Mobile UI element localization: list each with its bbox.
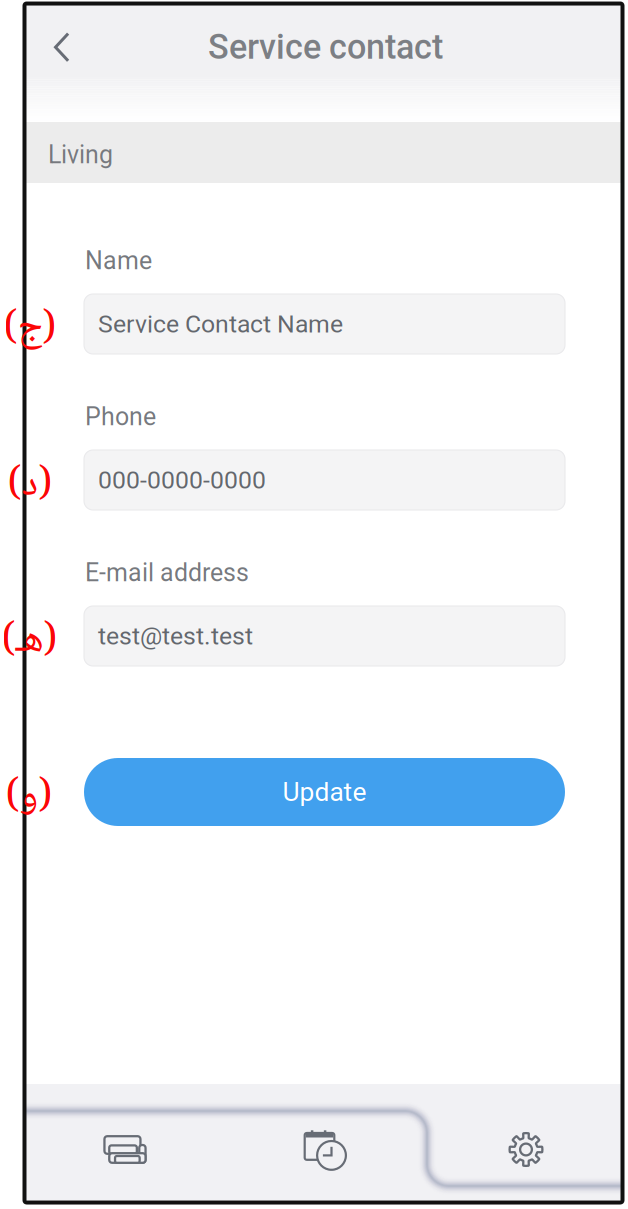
- button[interactable]: 000-0000-0000: [84, 450, 565, 510]
- staticText: 000-0000-0000: [98, 465, 266, 495]
- staticText: Update: [282, 776, 366, 807]
- button[interactable]: Back: [26, 10, 98, 84]
- staticText: Living: [48, 140, 113, 169]
- staticText: Name: [85, 246, 152, 275]
- staticText: (د): [7, 452, 52, 520]
- button[interactable]: Service Contact Name: [84, 294, 565, 354]
- staticText: Service contact: [208, 27, 443, 67]
- button[interactable]: Settings: [427, 1090, 625, 1209]
- button[interactable]: Schedule: [226, 1090, 424, 1209]
- staticText: test@test.test: [98, 621, 253, 651]
- staticText: (ج): [3, 296, 56, 364]
- staticText: Service Contact Name: [98, 309, 343, 339]
- staticText: E-mail address: [85, 558, 249, 587]
- button[interactable]: Update: [84, 758, 565, 826]
- button[interactable]: Printers: [26, 1090, 224, 1209]
- button[interactable]: test@test.test: [84, 606, 565, 666]
- staticText: Phone: [85, 402, 156, 431]
- staticText: (و): [5, 764, 52, 832]
- staticText: (هـ): [1, 608, 57, 676]
